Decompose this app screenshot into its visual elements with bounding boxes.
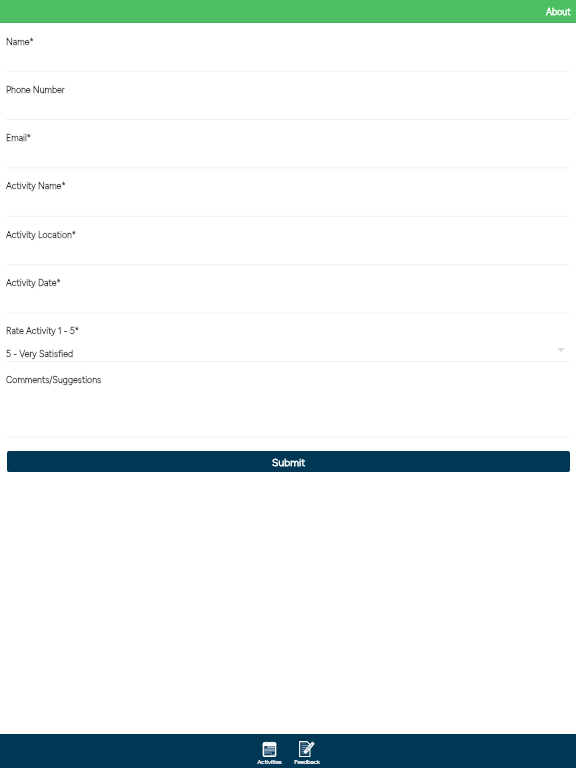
staticText: Activity Name* bbox=[6, 181, 66, 192]
staticText: Comments/Suggestions bbox=[6, 375, 102, 386]
staticText: Rate Activity 1 - 5* bbox=[6, 326, 79, 337]
button[interactable]: Activity Name* bbox=[0, 167, 576, 215]
staticText: Submit bbox=[272, 456, 306, 468]
staticText: Activity Date* bbox=[6, 278, 61, 289]
button[interactable]: Activity Date* bbox=[0, 264, 576, 312]
button[interactable]: Email* bbox=[0, 119, 576, 167]
button[interactable]: Comments/Suggestions bbox=[0, 361, 576, 437]
staticText: About bbox=[546, 7, 571, 18]
staticText: Activity Location* bbox=[6, 230, 77, 241]
button[interactable]: Submit bbox=[7, 451, 570, 472]
button[interactable]: About bbox=[538, 4, 576, 19]
staticText: Phone Number bbox=[6, 85, 65, 96]
staticText: Activities bbox=[257, 758, 282, 765]
button[interactable]: Activity Location* bbox=[0, 216, 576, 264]
staticText: Email* bbox=[6, 133, 32, 144]
button[interactable]: Rate Activity 1 - 5* bbox=[0, 313, 576, 361]
button[interactable]: Feedback bbox=[288, 734, 325, 768]
staticText: Feedback bbox=[294, 758, 320, 765]
button[interactable]: Name* bbox=[0, 23, 576, 71]
button[interactable]: Phone Number bbox=[0, 71, 576, 119]
button[interactable]: Activities bbox=[251, 734, 288, 768]
staticText: 5 - Very Satisfied bbox=[6, 349, 74, 360]
staticText: Name* bbox=[6, 37, 34, 48]
